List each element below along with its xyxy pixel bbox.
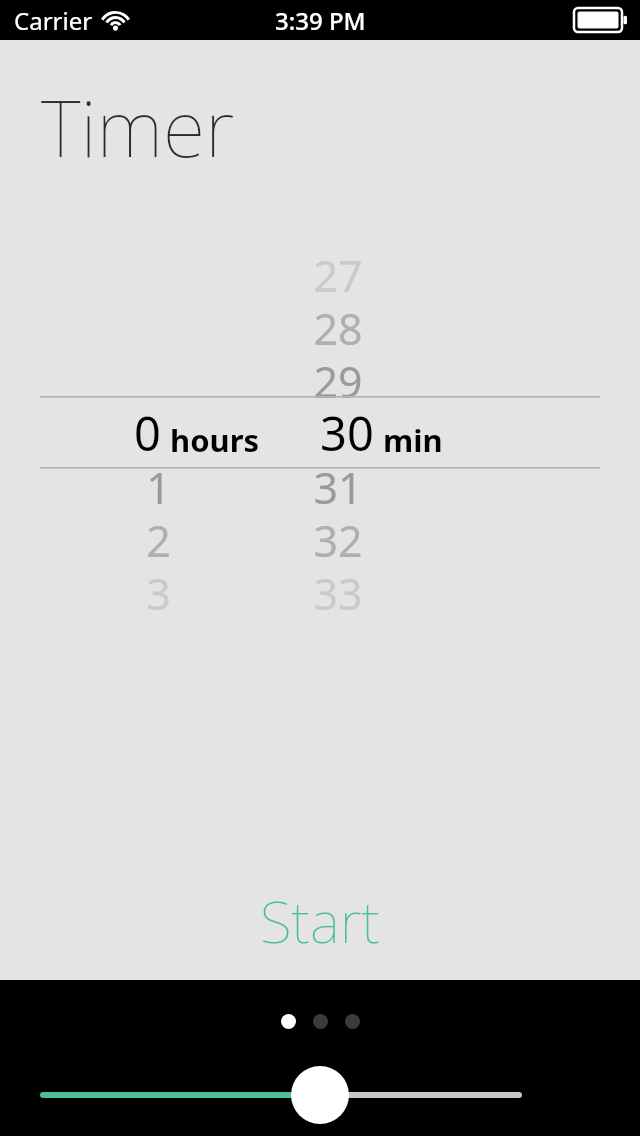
staticText: 29 <box>313 352 363 406</box>
button[interactable]: 31 <box>278 458 398 512</box>
button[interactable]: 29 <box>278 352 398 406</box>
staticText: 1 <box>146 458 171 512</box>
staticText: 33 <box>313 564 363 618</box>
staticText: 3 <box>146 564 171 618</box>
button[interactable]: 1 <box>98 458 218 512</box>
button[interactable]: 0 <box>0 398 640 467</box>
staticText: 0 <box>134 401 161 465</box>
staticText: min <box>383 419 443 461</box>
button[interactable]: 2 <box>98 511 218 565</box>
staticText: 3:39 PM <box>275 4 366 37</box>
staticText: 31 <box>313 458 363 512</box>
button[interactable]: 27 <box>278 246 398 300</box>
button[interactable]: 3 <box>98 564 218 618</box>
button[interactable]: Page 3 <box>345 1014 360 1029</box>
staticText: Start <box>260 881 380 960</box>
staticText: hours <box>170 419 260 461</box>
button[interactable]: Start <box>0 878 640 962</box>
button[interactable]: Page 2 <box>313 1014 328 1029</box>
button[interactable]: Page 1 <box>281 1014 296 1029</box>
staticText: 2 <box>146 511 171 565</box>
button[interactable]: Slider <box>0 1065 640 1125</box>
staticText: Timer <box>41 74 235 180</box>
staticText: 30 <box>320 401 374 465</box>
staticText: 27 <box>313 246 363 300</box>
staticText: 28 <box>313 299 363 353</box>
button[interactable]: 33 <box>278 564 398 618</box>
staticText: Carrier <box>14 4 93 37</box>
button[interactable]: 32 <box>278 511 398 565</box>
staticText: 32 <box>313 511 363 565</box>
button[interactable]: 28 <box>278 299 398 353</box>
